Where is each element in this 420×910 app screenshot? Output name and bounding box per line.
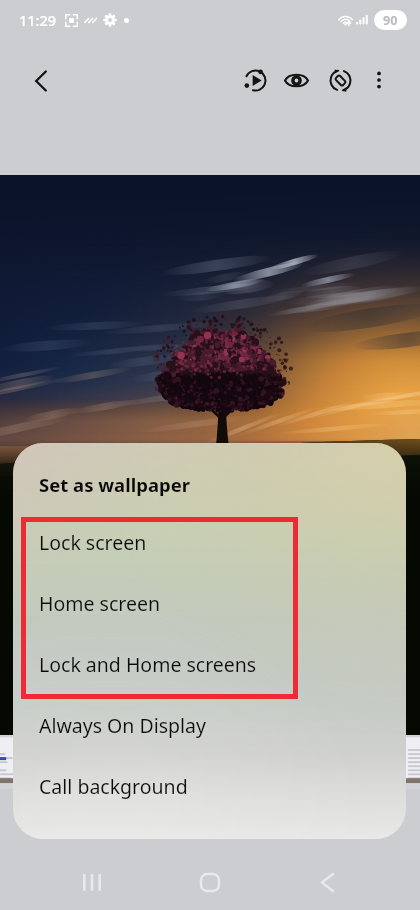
button[interactable]: Home screen xyxy=(13,573,406,633)
staticText: Always On Display xyxy=(39,712,206,739)
button[interactable]: Recent apps xyxy=(69,859,115,905)
button[interactable]: Play motion wallpaper xyxy=(232,57,278,103)
staticText: Call background xyxy=(39,773,188,800)
staticText: Lock and Home screens xyxy=(39,651,257,678)
button[interactable]: Lock screen xyxy=(13,512,406,572)
staticText: 90 xyxy=(383,12,398,29)
button[interactable]: Call background xyxy=(13,756,406,816)
button[interactable]: Rotate xyxy=(317,57,363,103)
staticText: 11:29 xyxy=(19,10,57,30)
button[interactable]: Lock and Home screens xyxy=(13,634,406,694)
staticText: Set as wallpaper xyxy=(39,472,190,497)
button[interactable]: Always On Display xyxy=(13,695,406,755)
button[interactable]: Back xyxy=(304,859,350,905)
button[interactable]: Preview xyxy=(273,57,319,103)
button[interactable]: Back xyxy=(18,58,64,104)
button[interactable]: Home xyxy=(187,859,233,905)
staticText: Home screen xyxy=(39,590,160,617)
staticText: Lock screen xyxy=(39,529,147,556)
button[interactable]: More options xyxy=(356,57,402,103)
